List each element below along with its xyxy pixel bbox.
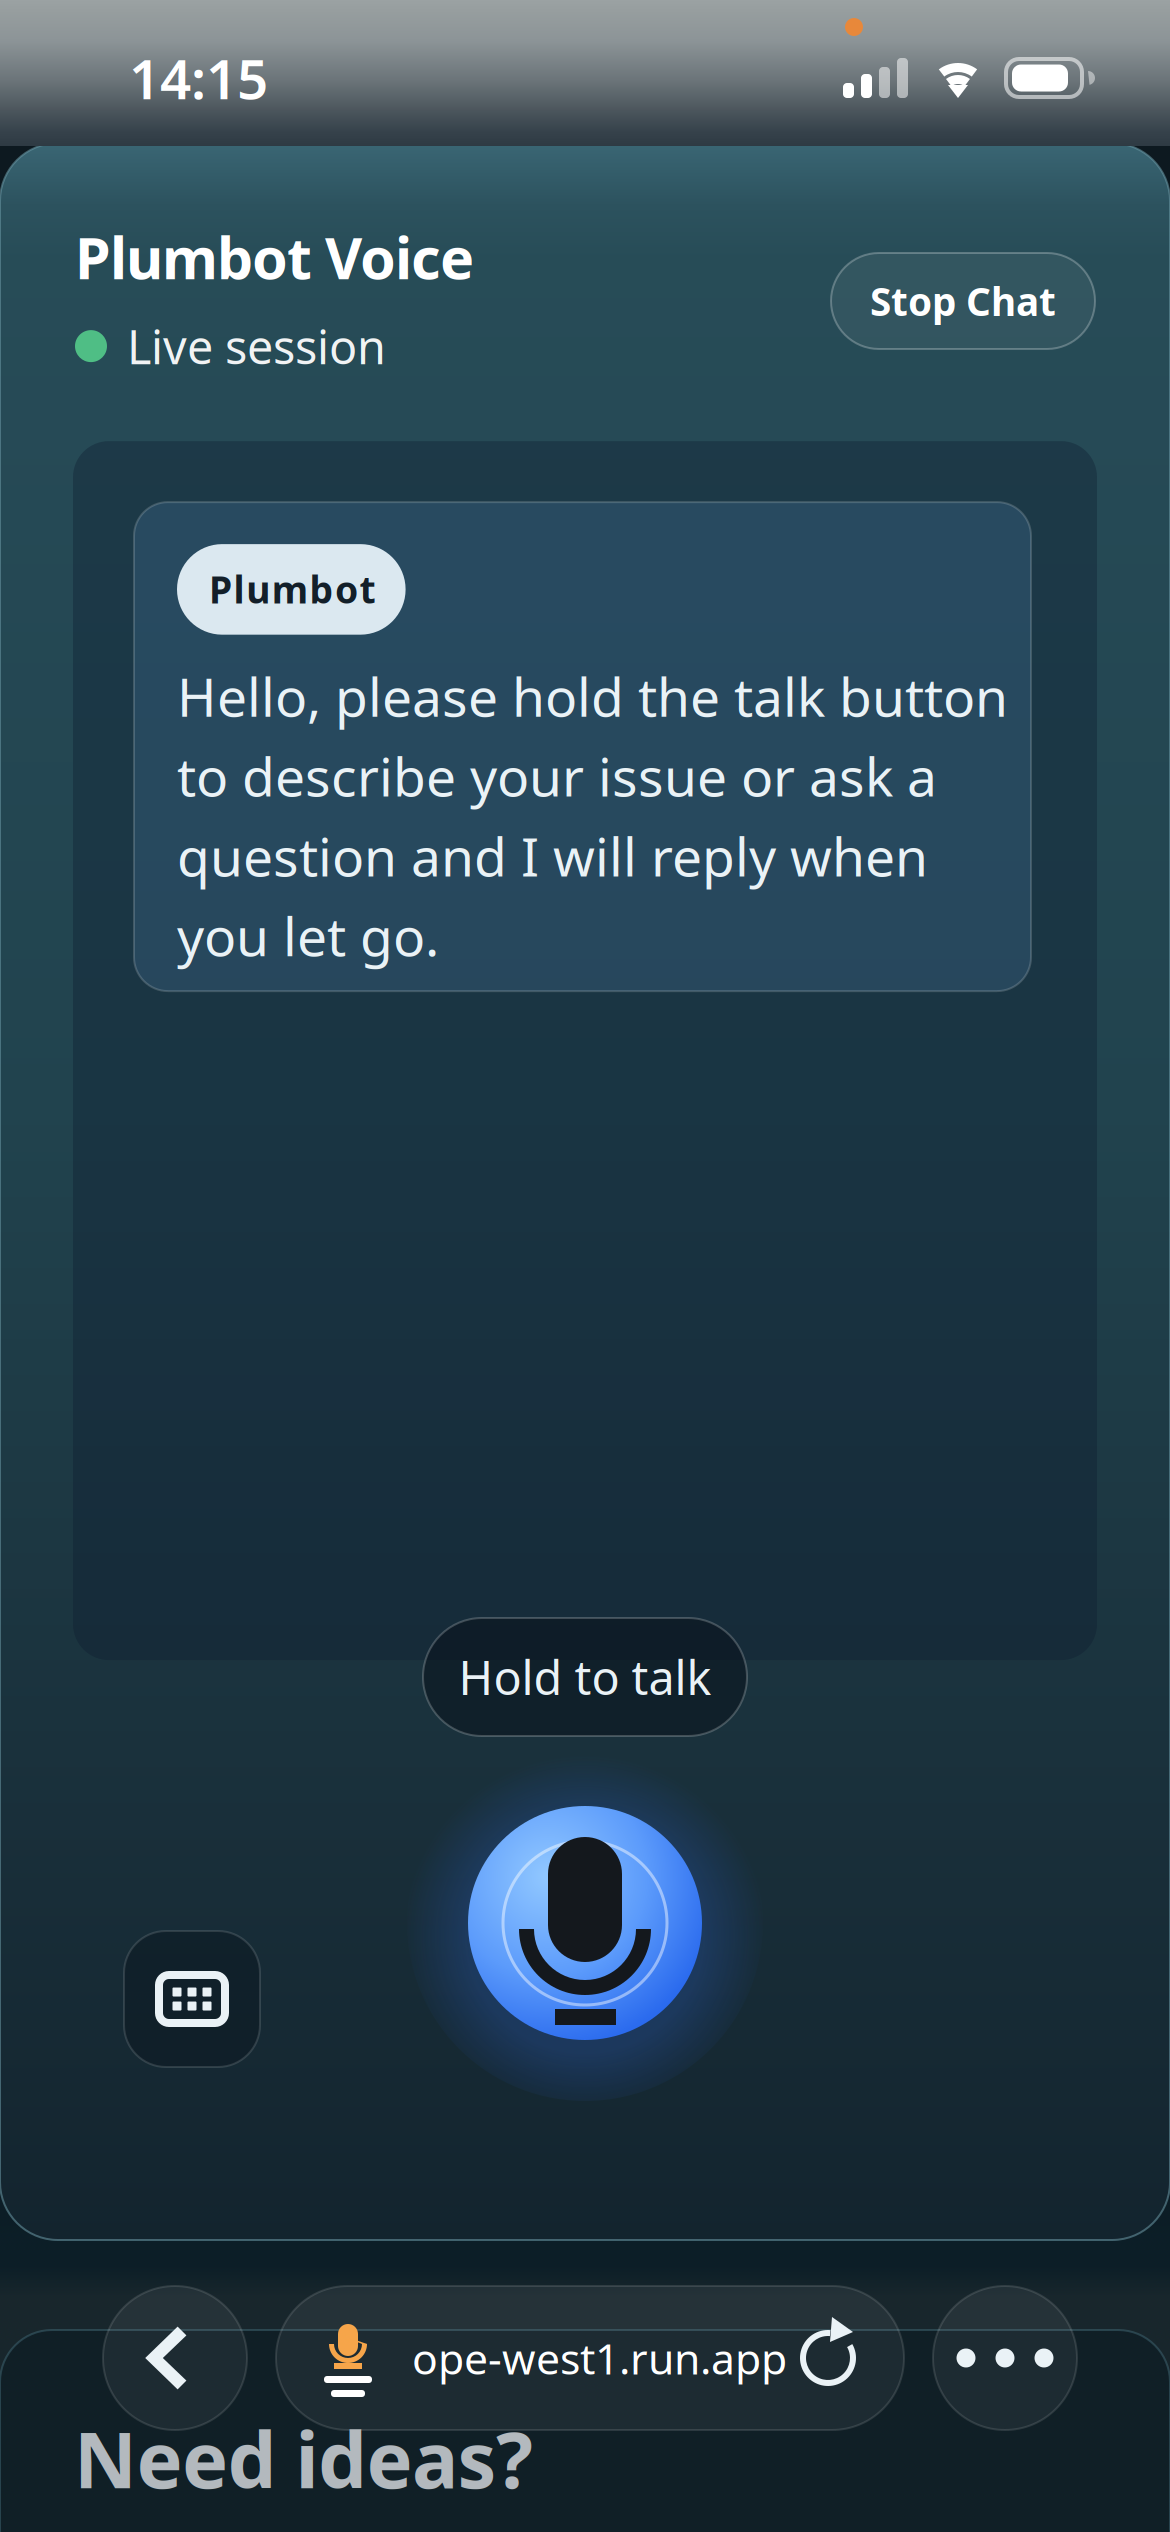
- staticText: Hold to talk: [458, 1646, 711, 1708]
- button[interactable]: More: [933, 2286, 1077, 2430]
- button[interactable]: Hold to talk: [407, 1745, 763, 2101]
- button[interactable]: Keyboard: [124, 1931, 260, 2067]
- staticText: Need ideas?: [74, 2407, 533, 2510]
- button[interactable]: Hold to talk: [423, 1618, 747, 1736]
- button[interactable]: Back: [103, 2286, 247, 2430]
- staticText: Plumbot: [209, 564, 376, 614]
- staticText: Plumbot Voice: [75, 219, 474, 295]
- staticText: 14:15: [129, 42, 268, 114]
- button[interactable]: ope-west1.run.app: [276, 2286, 904, 2430]
- button[interactable]: Stop Chat: [831, 253, 1095, 349]
- staticText: Live session: [127, 315, 386, 377]
- staticText: Stop Chat: [870, 275, 1056, 327]
- staticText: Hello, please hold the talk button to de…: [177, 661, 1008, 971]
- staticText: ope-west1.run.app: [412, 2330, 787, 2386]
